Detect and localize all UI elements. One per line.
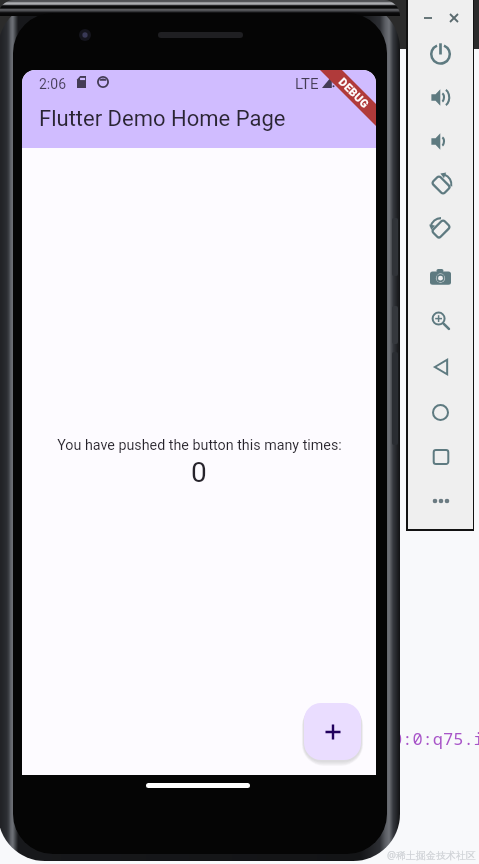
button[interactable]: Back — [408, 346, 473, 388]
button[interactable]: More — [408, 480, 473, 522]
button[interactable]: Take screenshot — [408, 256, 473, 298]
staticText: DEBUG — [336, 75, 372, 112]
button[interactable]: Rotate left — [408, 164, 473, 206]
staticText: 0 — [191, 456, 207, 489]
button[interactable]: Home — [408, 391, 473, 433]
button[interactable]: Volume up — [408, 76, 473, 118]
staticText: 2:06 — [39, 76, 66, 92]
button[interactable]: Rotate right — [408, 208, 473, 250]
staticText: 0:0:q75.i — [392, 727, 479, 750]
staticText: You have pushed the button this many tim… — [57, 437, 342, 454]
button[interactable]: Volume down — [408, 120, 473, 162]
button[interactable]: Zoom — [408, 300, 473, 342]
button[interactable]: Minimize — [418, 8, 438, 28]
button[interactable]: Close — [444, 8, 464, 28]
button[interactable]: Increment — [304, 703, 361, 760]
button[interactable]: Overview — [408, 436, 473, 478]
staticText: @稀土掘金技术社区 — [387, 848, 476, 862]
staticText: Flutter Demo Home Page — [39, 106, 286, 132]
staticText: LTE — [295, 75, 319, 93]
button[interactable]: Power — [408, 32, 473, 74]
